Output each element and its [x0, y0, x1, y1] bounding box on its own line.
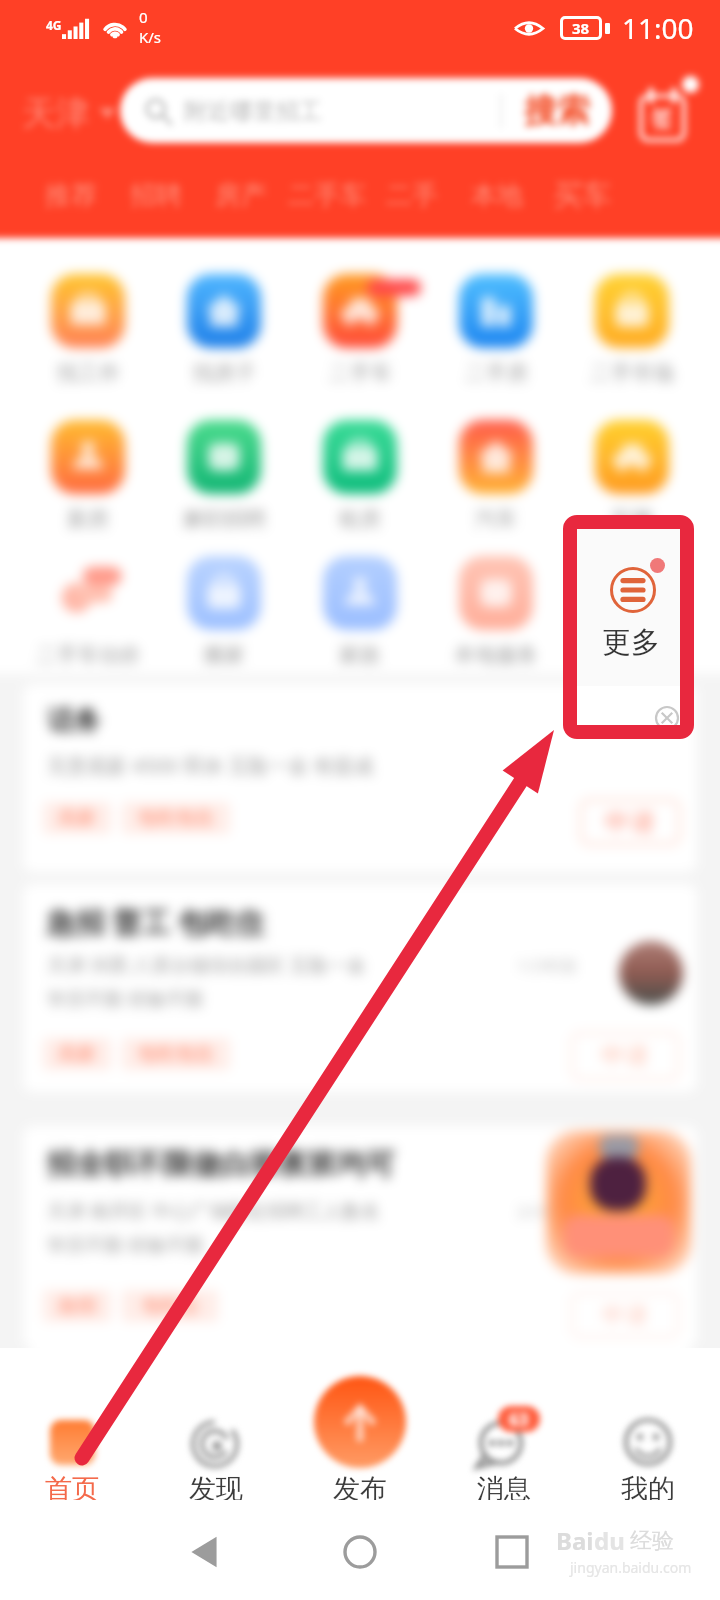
- staticText: 0: [139, 7, 148, 27]
- button[interactable]: 本地服务: [428, 556, 564, 674]
- button[interactable]: 新房: [20, 420, 156, 538]
- staticText: 搜索: [524, 90, 590, 132]
- staticText: 1小时前: [517, 954, 578, 977]
- button[interactable]: 发布: [288, 1396, 432, 1500]
- staticText: 找房子: [193, 360, 256, 386]
- button[interactable]: 推荐: [29, 174, 113, 216]
- button[interactable]: 招聘: [114, 174, 198, 216]
- button[interactable]: Home: [330, 1522, 390, 1582]
- staticText: 包吃包住: [138, 1042, 214, 1066]
- staticText: 发现: [189, 1472, 243, 1500]
- staticText: 汽车: [475, 506, 517, 532]
- button[interactable]: 二手房: [428, 274, 564, 392]
- staticText: 二手车: [329, 360, 392, 386]
- button[interactable]: 家政: [292, 556, 428, 674]
- button[interactable]: 搬家: [156, 556, 292, 674]
- button[interactable]: 申请: [571, 1292, 679, 1338]
- button[interactable]: 找工作: [20, 274, 156, 392]
- staticText: 二手房: [465, 360, 528, 386]
- button[interactable]: Back: [175, 1522, 235, 1582]
- button[interactable]: 房产: [199, 174, 283, 216]
- staticText: 附近哪里招工: [184, 97, 322, 126]
- button[interactable]: Recents: [482, 1522, 542, 1582]
- staticText: 学历不限 经验不限: [47, 1232, 204, 1258]
- staticText: 申请: [601, 1041, 649, 1071]
- staticText: 本地: [471, 179, 523, 212]
- staticText: 搬家: [203, 642, 245, 668]
- staticText: 发布: [333, 1472, 387, 1500]
- button[interactable]: 招全职不限做白班夜班均可: [23, 1126, 697, 1348]
- button[interactable]: 租房: [292, 420, 428, 538]
- button[interactable]: 签到: [630, 82, 694, 144]
- staticText: 更多: [602, 624, 660, 661]
- button[interactable]: 车辆: [564, 420, 700, 538]
- staticText: 二手车估价: [36, 642, 141, 668]
- button[interactable]: 我的: [576, 1396, 720, 1500]
- button[interactable]: 找房子: [156, 274, 292, 392]
- staticText: 二手车: [288, 179, 366, 212]
- button[interactable]: 附近哪里招工: [120, 78, 612, 143]
- staticText: 找工作: [57, 360, 120, 386]
- staticText: 申请: [605, 807, 655, 838]
- staticText: 二手市场: [590, 360, 674, 386]
- button[interactable]: 申请: [580, 799, 680, 845]
- staticText: 天津 南开区 中心广场附近招聘工人数名: [47, 1198, 380, 1224]
- staticText: 包吃住: [142, 1294, 199, 1318]
- staticText: 签: [651, 104, 674, 133]
- staticText: 学历不限 经验不限: [47, 986, 204, 1012]
- button[interactable]: 二手车: [285, 174, 369, 216]
- staticText: 消息: [477, 1472, 531, 1500]
- button[interactable]: 急招 普工 包吃住: [23, 884, 697, 1092]
- staticText: 首页: [45, 1472, 99, 1500]
- staticText: 话务: [47, 704, 101, 738]
- staticText: 高薪: [58, 1042, 96, 1066]
- staticText: 家政: [339, 642, 381, 668]
- button[interactable]: 二手市场: [564, 274, 700, 392]
- staticText: K/s: [139, 27, 162, 47]
- staticText: 车辆: [611, 506, 653, 532]
- button[interactable]: 二手: [370, 174, 454, 216]
- button[interactable]: [575, 527, 686, 686]
- staticText: 我的: [621, 1472, 675, 1500]
- staticText: jingyan.baidu.com: [570, 1558, 692, 1577]
- staticText: 38: [572, 18, 590, 38]
- button[interactable]: 首页: [0, 1396, 144, 1500]
- staticText: 无责底薪 4500 双休 五险一金 有提成: [47, 752, 374, 779]
- staticText: 2小时前: [517, 1200, 578, 1223]
- staticText: Bai: [556, 1524, 594, 1557]
- staticText: 兼职招聘: [182, 506, 266, 532]
- button[interactable]: 兼职招聘: [156, 420, 292, 538]
- button[interactable]: 二手车估价: [20, 556, 156, 674]
- staticText: 急招: [58, 1294, 96, 1318]
- staticText: 招聘: [130, 179, 182, 212]
- staticText: 经验: [630, 1527, 674, 1555]
- button[interactable]: 发现: [144, 1396, 288, 1500]
- staticText: 63: [509, 1408, 529, 1431]
- staticText: 申请: [602, 1301, 648, 1330]
- button[interactable]: 二手车: [292, 274, 428, 392]
- button[interactable]: 天津: [22, 92, 116, 134]
- staticText: 高薪: [58, 806, 96, 830]
- staticText: 包吃包住: [138, 806, 214, 830]
- staticText: 推荐: [45, 179, 97, 212]
- staticText: 11:00: [622, 9, 694, 47]
- staticText: 本地服务: [454, 642, 538, 668]
- button[interactable]: 申请: [571, 1032, 679, 1080]
- staticText: 天津 河西 八里台镇综合园区 五险一金: [47, 952, 366, 978]
- staticText: 房产: [215, 179, 267, 212]
- button[interactable]: 本地: [455, 174, 539, 216]
- button[interactable]: 话务: [23, 684, 697, 872]
- button[interactable]: 消息: [432, 1396, 576, 1500]
- button[interactable]: 汽车: [428, 420, 564, 538]
- staticText: 二手: [386, 179, 438, 212]
- staticText: 招全职不限做白班夜班均可: [47, 1146, 395, 1183]
- staticText: 租房: [339, 506, 381, 532]
- button[interactable]: 买车: [540, 174, 624, 216]
- staticText: 新房: [67, 506, 109, 532]
- staticText: 4G: [46, 17, 62, 33]
- staticText: 急招 普工 包吃住: [47, 902, 266, 942]
- staticText: du: [594, 1524, 625, 1557]
- staticText: 买车: [553, 177, 611, 214]
- staticText: 天津: [22, 92, 90, 134]
